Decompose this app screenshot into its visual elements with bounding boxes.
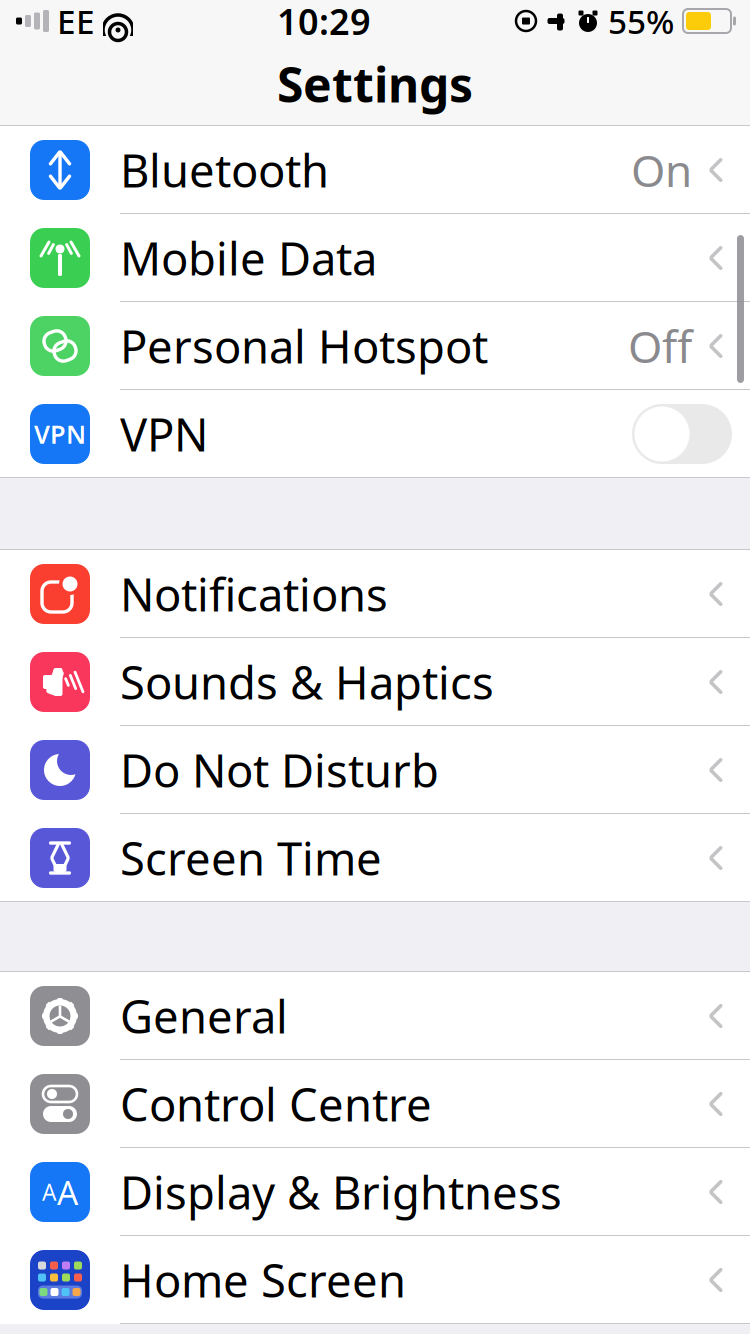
- staticText: 55%: [608, 0, 674, 43]
- button[interactable]: A: [0, 1148, 750, 1236]
- staticText: A: [42, 1177, 56, 1207]
- staticText: Personal Hotspot: [120, 316, 488, 376]
- staticText: Off: [628, 317, 692, 375]
- button[interactable]: Bluetooth: [0, 126, 750, 214]
- button[interactable]: VPN: [0, 390, 750, 478]
- staticText: VPN: [120, 404, 208, 464]
- staticText: Bluetooth: [120, 140, 329, 200]
- staticText: Notifications: [120, 564, 388, 624]
- staticText: A: [57, 1170, 78, 1214]
- staticText: Home Screen: [120, 1250, 406, 1310]
- staticText: EE: [57, 0, 95, 43]
- staticText: Screen Time: [120, 828, 382, 888]
- button[interactable]: Notifications: [0, 550, 750, 638]
- staticText: Sounds & Haptics: [120, 652, 494, 712]
- button[interactable]: Personal Hotspot: [0, 302, 750, 390]
- staticText: General: [120, 986, 288, 1046]
- button[interactable]: Sounds & Haptics: [0, 638, 750, 726]
- staticText: 10:29: [277, 0, 371, 45]
- button[interactable]: General: [0, 972, 750, 1060]
- staticText: Mobile Data: [120, 228, 377, 288]
- button[interactable]: Home Screen: [0, 1236, 750, 1324]
- button[interactable]: Mobile Data: [0, 214, 750, 302]
- button[interactable]: Screen Time: [0, 814, 750, 902]
- staticText: VPN: [34, 417, 86, 451]
- staticText: On: [631, 141, 692, 199]
- staticText: Control Centre: [120, 1074, 432, 1134]
- staticText: Display & Brightness: [120, 1162, 562, 1222]
- button[interactable]: Do Not Disturb: [0, 726, 750, 814]
- staticText: Settings: [277, 52, 473, 116]
- button[interactable]: Control Centre: [0, 1060, 750, 1148]
- staticText: Do Not Disturb: [120, 740, 439, 800]
